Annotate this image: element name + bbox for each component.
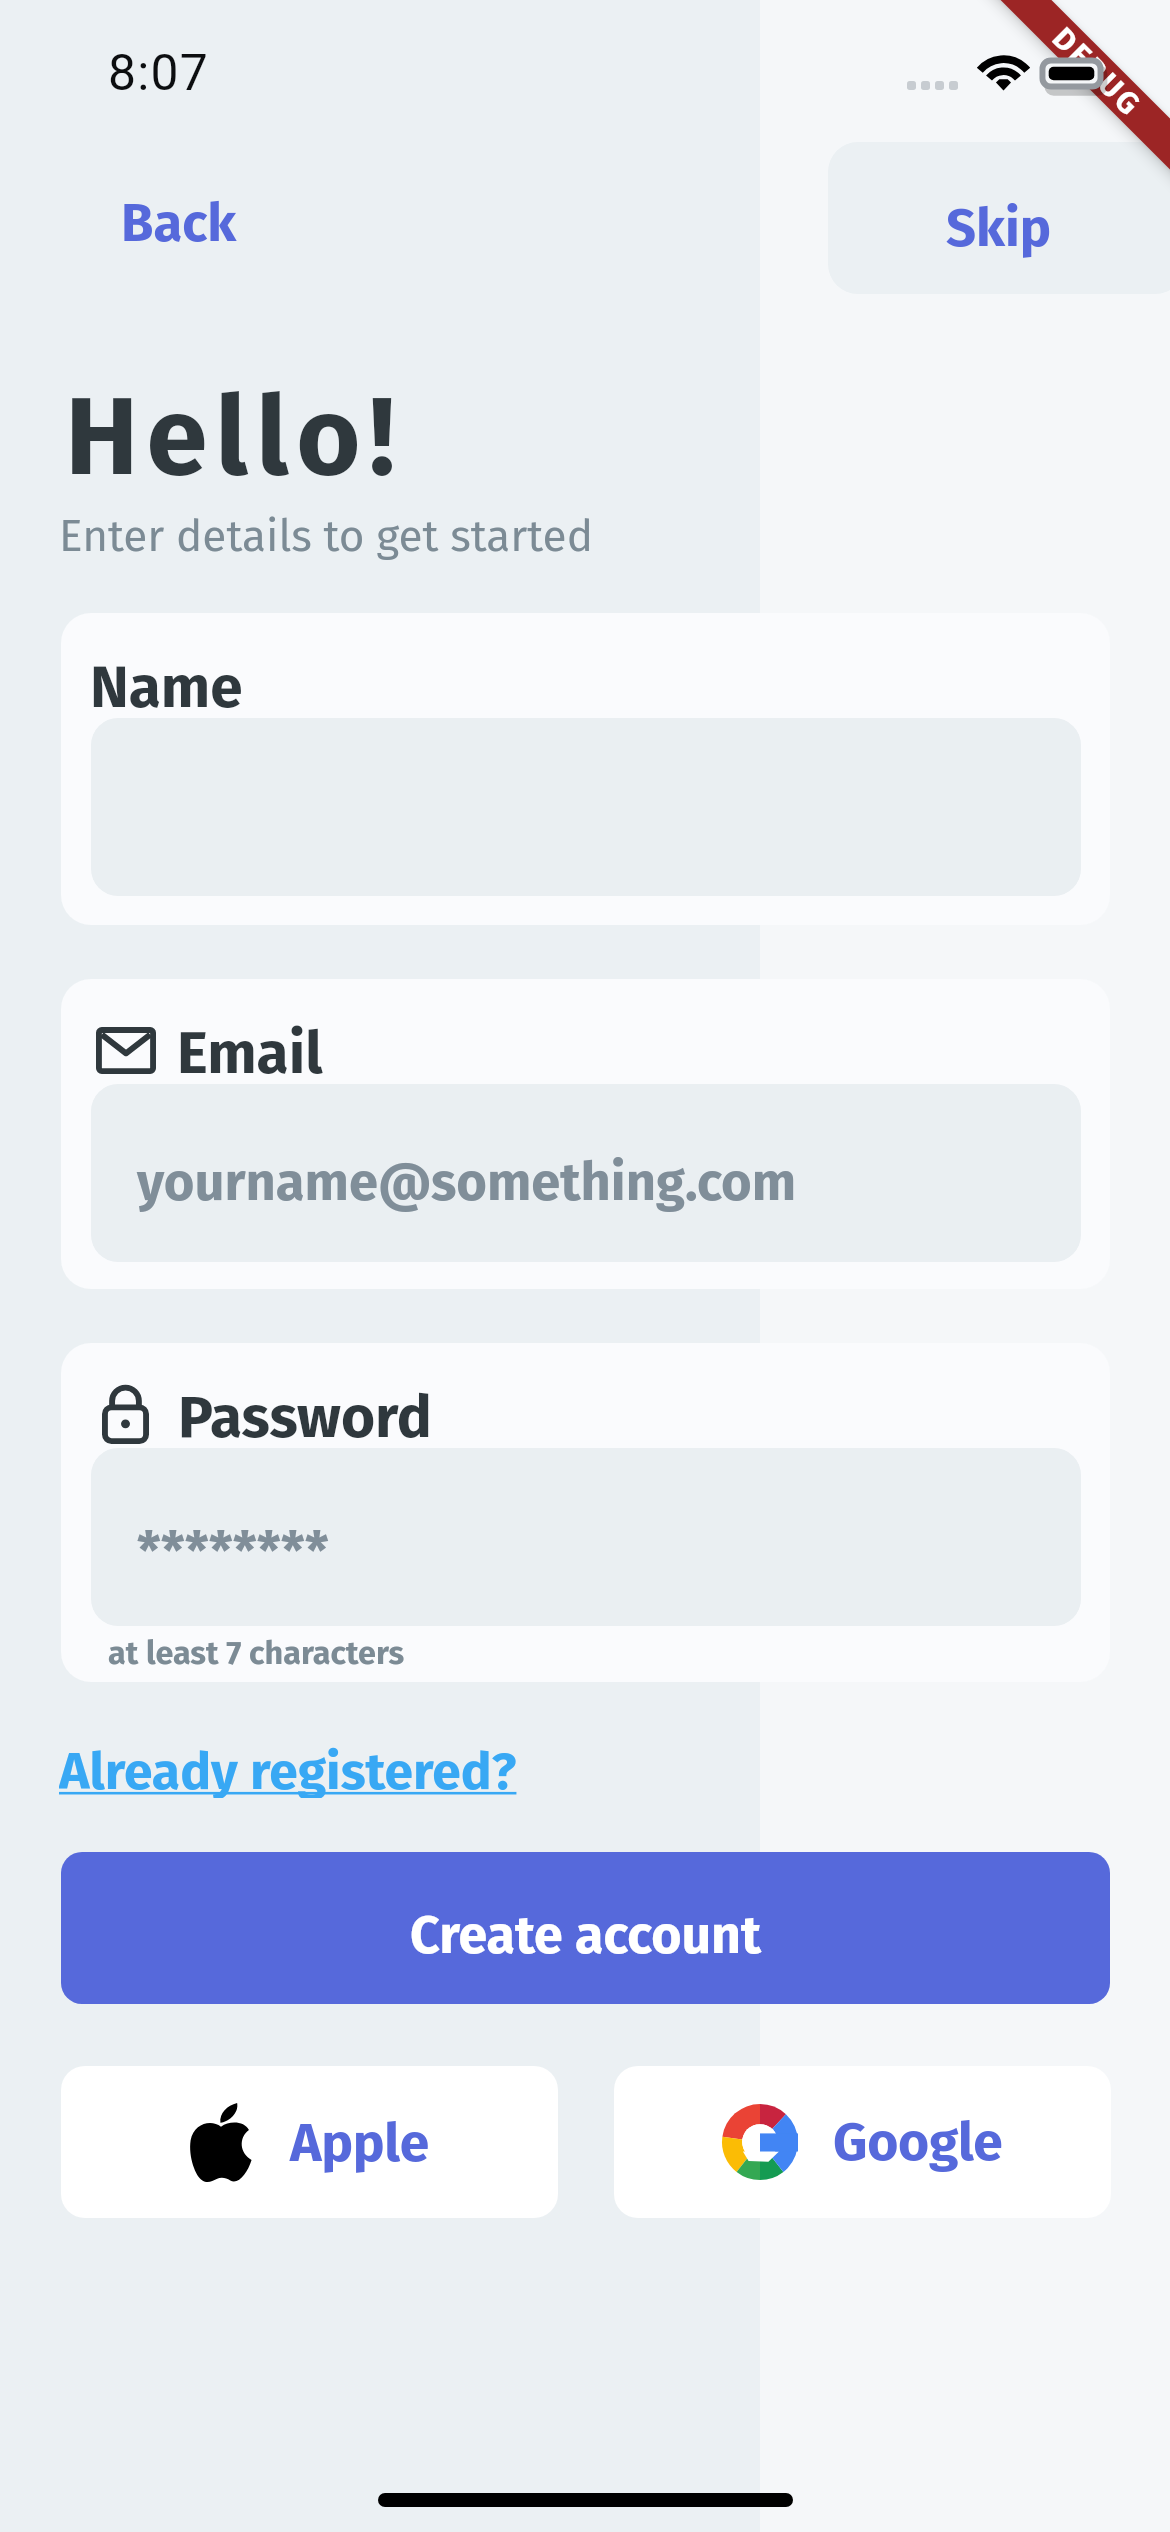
staticText: Hello! [65, 371, 404, 503]
button[interactable]: Apple [61, 2066, 558, 2218]
button[interactable]: Name [61, 613, 1110, 925]
staticText: Apple [290, 2111, 429, 2175]
staticText: Skip [946, 197, 1052, 260]
staticText: Already registered? [59, 1741, 517, 1798]
staticText: Email [177, 1018, 323, 1088]
button[interactable]: Password [61, 1343, 1110, 1682]
button[interactable]: Back [99, 141, 273, 293]
staticText: Google [833, 2110, 1003, 2174]
button[interactable]: Google [614, 2066, 1111, 2218]
staticText: Back [121, 192, 237, 255]
button[interactable]: Email [61, 979, 1110, 1289]
staticText: Enter details to get started [59, 510, 594, 563]
staticText: Name [90, 652, 243, 722]
staticText: at least 7 characters [108, 1634, 405, 1673]
staticText: Create account [410, 1904, 762, 1966]
staticText: 8:07 [108, 44, 209, 102]
button[interactable]: Create account [61, 1852, 1110, 2004]
staticText: Password [178, 1382, 432, 1452]
staticText: yourname@something.com [137, 1151, 797, 1214]
button[interactable]: Already registered? [59, 1741, 518, 1798]
staticText: DEBUG [1046, 20, 1150, 124]
staticText: ******** [137, 1520, 329, 1583]
button[interactable]: Skip [828, 142, 1170, 294]
